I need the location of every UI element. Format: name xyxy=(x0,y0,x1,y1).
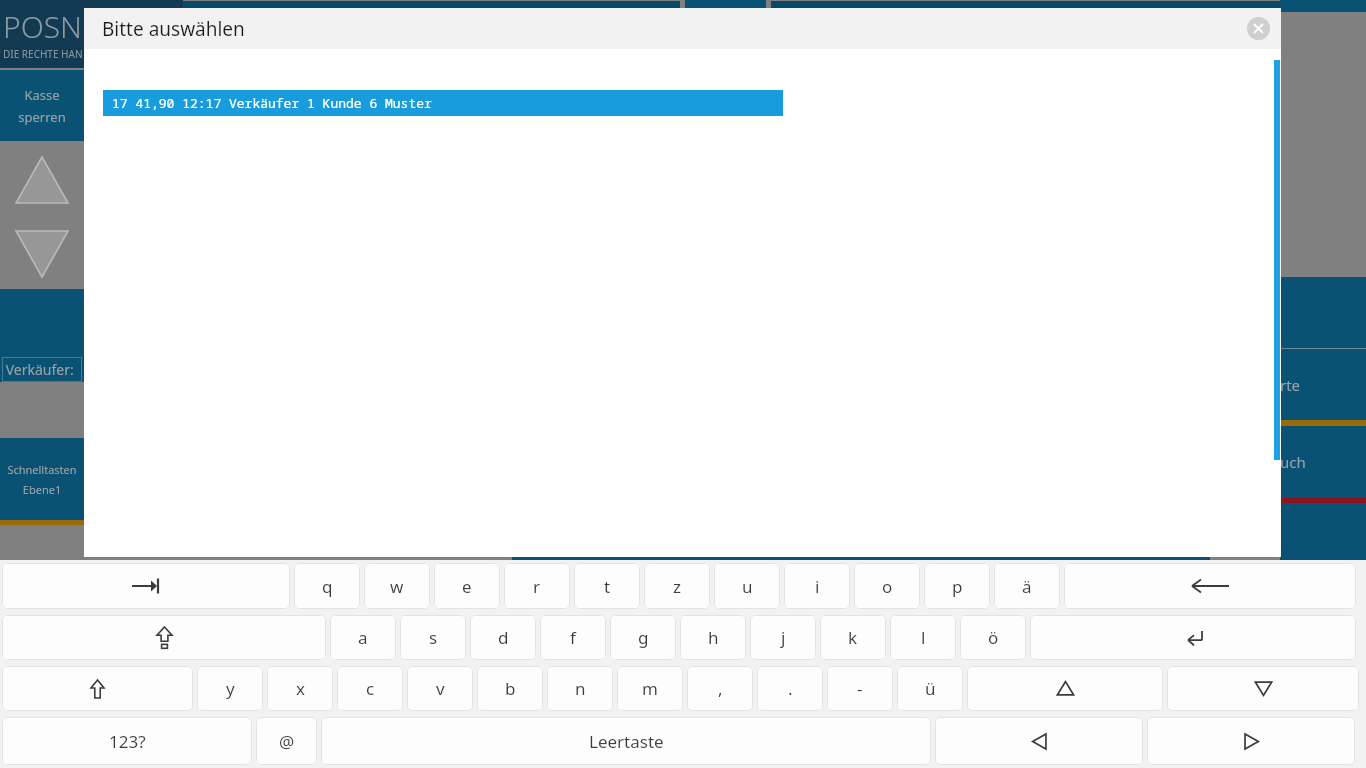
button[interactable]: b xyxy=(477,666,543,711)
staticText: 17 41,90 12:17 Verkäufer 1 Kunde 6 Muste… xyxy=(112,94,432,112)
button[interactable]: f xyxy=(540,615,606,660)
staticText: m xyxy=(642,677,658,700)
staticText: n xyxy=(575,677,586,700)
staticText: j xyxy=(781,626,786,649)
staticText: rte xyxy=(1280,375,1301,395)
staticText: t xyxy=(604,575,611,598)
staticText: w xyxy=(390,575,404,598)
staticText: g xyxy=(638,626,649,649)
button[interactable]: r xyxy=(504,563,570,609)
button[interactable]: Funktion xyxy=(685,0,766,12)
staticText: c xyxy=(366,677,375,700)
button[interactable]: z xyxy=(644,563,710,609)
staticText: d xyxy=(498,626,509,649)
staticText: v xyxy=(436,677,445,700)
button[interactable]: ü xyxy=(897,666,963,711)
staticText: s xyxy=(429,626,438,649)
button[interactable]: Schließen xyxy=(1247,17,1270,40)
staticText: uch xyxy=(1280,452,1306,472)
staticText: - xyxy=(857,677,863,700)
staticText: y xyxy=(226,677,235,700)
button[interactable]: w xyxy=(364,563,430,609)
button[interactable]: Leertaste xyxy=(321,717,931,765)
button[interactable]: a xyxy=(330,615,396,660)
button[interactable]: Nach rechts xyxy=(1147,717,1355,765)
button[interactable]: e xyxy=(434,563,500,609)
staticText: z xyxy=(673,575,681,598)
staticText: q xyxy=(322,575,333,598)
staticText: DIE RECHTE HAN xyxy=(3,47,83,61)
button[interactable]: v xyxy=(407,666,473,711)
staticText: Verkäufer: 1 xyxy=(2,360,82,379)
button[interactable]: - xyxy=(827,666,893,711)
staticText: f xyxy=(570,626,576,649)
button[interactable]: Nach oben xyxy=(0,141,84,219)
button[interactable]: @ xyxy=(256,717,317,765)
staticText: p xyxy=(952,575,963,598)
button[interactable]: s xyxy=(400,615,466,660)
button[interactable]: Kopfzeile xyxy=(771,1,1366,12)
button[interactable]: i xyxy=(784,563,850,609)
button[interactable]: Kasse sperren xyxy=(0,70,84,141)
button[interactable]: Nach unten xyxy=(0,219,84,289)
button[interactable]: h xyxy=(680,615,746,660)
staticText: Bitte auswählen xyxy=(102,16,245,42)
button[interactable]: Löschen xyxy=(1064,563,1356,609)
button[interactable]: Eingabe xyxy=(1030,615,1356,660)
button[interactable]: y xyxy=(197,666,263,711)
staticText: Leertaste xyxy=(589,730,664,753)
button[interactable]: Suchfeld xyxy=(183,1,680,12)
staticText: o xyxy=(882,575,893,598)
staticText: x xyxy=(296,677,305,700)
button[interactable]: . xyxy=(757,666,823,711)
button[interactable]: uch xyxy=(1280,426,1366,498)
staticText: k xyxy=(848,626,858,649)
staticText: , xyxy=(718,677,723,700)
button[interactable]: Schnelltasten Ebene1 xyxy=(0,438,84,520)
button[interactable]: rte xyxy=(1280,349,1366,420)
button[interactable]: d xyxy=(470,615,536,660)
button[interactable]: x xyxy=(267,666,333,711)
button[interactable]: n xyxy=(547,666,613,711)
button[interactable]: m xyxy=(617,666,683,711)
button[interactable]: g xyxy=(610,615,676,660)
button[interactable]: ö xyxy=(960,615,1026,660)
button[interactable]: j xyxy=(750,615,816,660)
staticText: i xyxy=(815,575,820,598)
staticText: ä xyxy=(1022,575,1032,598)
button[interactable]: p xyxy=(924,563,990,609)
button[interactable]: t xyxy=(574,563,640,609)
staticText: h xyxy=(708,626,719,649)
button[interactable]: q xyxy=(294,563,360,609)
staticText: a xyxy=(358,626,368,649)
button[interactable]: Nach oben xyxy=(967,666,1163,711)
staticText: @ xyxy=(279,730,295,753)
staticText: ö xyxy=(988,626,999,649)
button[interactable]: k xyxy=(820,615,886,660)
button[interactable]: Nach unten xyxy=(1167,666,1359,711)
button[interactable]: o xyxy=(854,563,920,609)
button[interactable]: c xyxy=(337,666,403,711)
staticText: POSN xyxy=(3,6,82,47)
button[interactable]: Option xyxy=(1280,277,1366,348)
staticText: ü xyxy=(925,677,936,700)
staticText: 123? xyxy=(109,730,146,753)
button[interactable]: Feststelltaste xyxy=(2,615,326,660)
button[interactable]: Verkäufer: 1 xyxy=(0,289,84,382)
button[interactable]: ä xyxy=(994,563,1060,609)
button[interactable]: 123? xyxy=(2,717,252,765)
button[interactable]: , xyxy=(687,666,753,711)
button[interactable]: Tabulator xyxy=(2,563,290,609)
staticText: l xyxy=(921,626,926,649)
staticText: b xyxy=(505,677,516,700)
staticText: Schnelltasten Ebene1 xyxy=(7,462,77,497)
staticText: . xyxy=(788,677,793,700)
staticText: r xyxy=(533,575,541,598)
button[interactable]: 17 41,90 12:17 Verkäufer 1 Kunde 6 Muste… xyxy=(103,90,783,116)
staticText: e xyxy=(462,575,472,598)
button[interactable]: Nach links xyxy=(935,717,1143,765)
staticText: Kasse sperren xyxy=(18,86,66,126)
button[interactable]: Umschalt xyxy=(2,666,193,711)
button[interactable]: l xyxy=(890,615,956,660)
button[interactable]: u xyxy=(714,563,780,609)
